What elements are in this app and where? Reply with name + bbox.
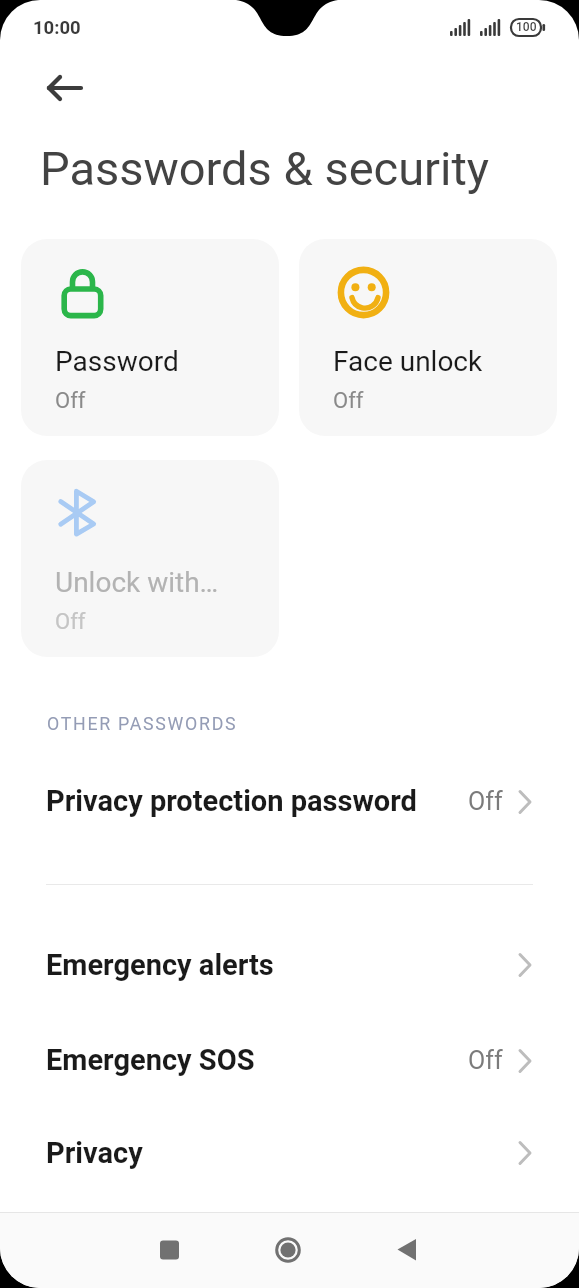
button[interactable] (274, 1236, 303, 1265)
button[interactable] (155, 1236, 184, 1265)
staticText: Face unlock (333, 345, 483, 378)
staticText: 10:00 (33, 17, 81, 39)
staticText: Passwords & security (40, 141, 490, 196)
staticText: Off (333, 388, 364, 414)
button[interactable]: Password (21, 239, 279, 436)
staticText: Off (468, 1046, 503, 1075)
button[interactable] (30, 68, 100, 108)
staticText: Off (55, 609, 86, 635)
staticText: Emergency alerts (46, 948, 274, 982)
staticText: Password (55, 345, 179, 378)
staticText: Privacy protection password (46, 784, 417, 818)
button[interactable]: Face unlock (299, 239, 557, 436)
staticText: Off (468, 787, 503, 816)
staticText: 100 (516, 20, 537, 34)
staticText: OTHER PASSWORDS (47, 713, 238, 734)
button[interactable]: Emergency alerts (0, 933, 579, 997)
button[interactable] (393, 1236, 422, 1265)
button[interactable]: Privacy protection password (0, 769, 579, 833)
button[interactable]: Emergency SOS (0, 1028, 579, 1092)
staticText: Off (55, 388, 86, 414)
button[interactable]: Unlock with… (21, 460, 279, 657)
staticText: Privacy (46, 1136, 143, 1170)
staticText: Emergency SOS (46, 1043, 255, 1077)
staticText: Unlock with… (55, 566, 219, 599)
button[interactable]: Privacy (0, 1121, 579, 1185)
